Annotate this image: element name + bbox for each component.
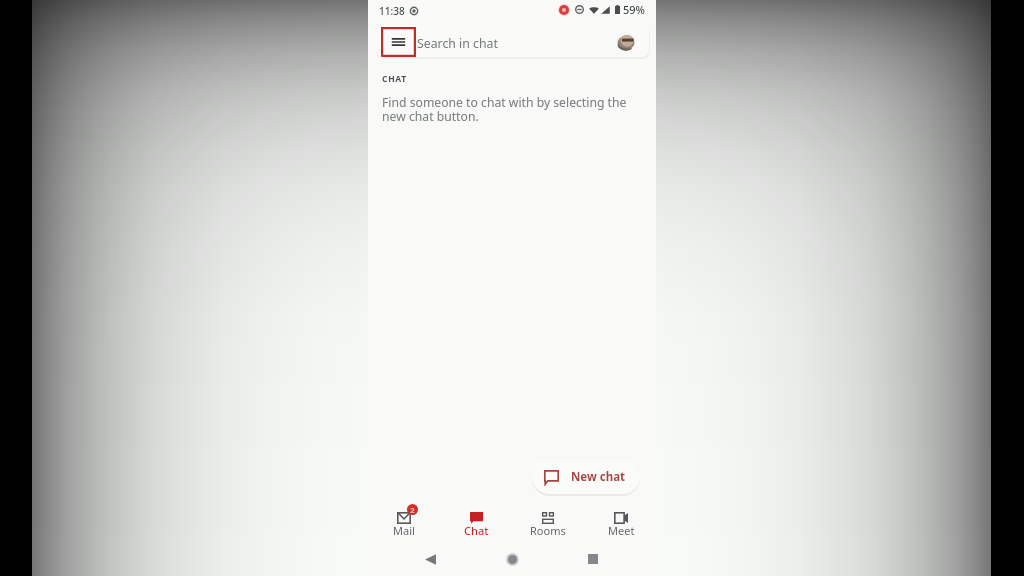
button[interactable]: Chat	[448, 501, 504, 543]
button[interactable]: Account	[616, 31, 636, 51]
button[interactable]: Meet	[593, 501, 649, 543]
button[interactable]: Rooms	[520, 501, 576, 543]
staticText: New chat	[571, 469, 626, 485]
staticText: 11:38	[379, 4, 405, 18]
staticText: Chat	[464, 523, 489, 538]
button[interactable]: 2	[376, 501, 432, 543]
button[interactable]: Recents	[579, 545, 607, 573]
staticText: Mail	[393, 523, 415, 538]
staticText: Find someone to chat with by selecting t…	[382, 94, 644, 125]
staticText: Meet	[608, 523, 635, 538]
staticText: Rooms	[530, 523, 566, 538]
button[interactable]: New chat	[532, 459, 640, 494]
button[interactable]: Menu	[376, 25, 649, 57]
button[interactable]: Back	[416, 545, 444, 573]
staticText: 59%	[623, 2, 645, 17]
button[interactable]: Menu	[381, 27, 416, 57]
staticText: Search in chat	[417, 35, 498, 52]
staticText: CHAT	[382, 73, 407, 85]
staticText: 2	[410, 505, 415, 515]
button[interactable]: Home	[498, 545, 526, 573]
